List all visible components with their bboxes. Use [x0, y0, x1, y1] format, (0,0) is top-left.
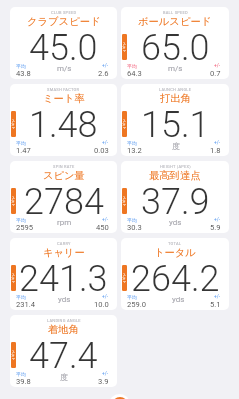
staticText: 259.0 — [127, 300, 147, 309]
staticText: m/s — [168, 64, 183, 73]
staticText: TOTAL — [168, 241, 182, 246]
staticText: 3.9 — [98, 377, 109, 386]
staticText: 37.9 — [141, 181, 210, 223]
staticText: 2784 — [24, 181, 104, 223]
staticText: ベスト — [122, 42, 126, 53]
staticText: ベスト — [11, 196, 15, 207]
staticText: m/s — [57, 64, 72, 73]
staticText: 2.6 — [98, 69, 109, 78]
staticText: 平均 — [16, 217, 26, 223]
staticText: 平均 — [16, 140, 26, 146]
staticText: 0.03 — [94, 146, 109, 155]
staticText: 度 — [172, 141, 180, 151]
staticText: スピン量 — [43, 169, 85, 182]
staticText: yds — [169, 218, 182, 227]
staticText: LANDING ANGLE — [47, 318, 81, 323]
staticText: +/- — [102, 294, 109, 300]
staticText: ベスト — [122, 119, 126, 130]
staticText: 43.8 — [16, 69, 31, 78]
staticText: +/- — [214, 63, 221, 69]
button[interactable]: Add shot — [109, 394, 130, 399]
staticText: 1.8 — [210, 146, 221, 155]
button[interactable]: Best result — [122, 265, 127, 291]
staticText: 47.4 — [29, 335, 98, 377]
staticText: 15.1 — [141, 104, 210, 146]
staticText: 2595 — [16, 223, 34, 232]
button[interactable]: Best result — [11, 265, 16, 291]
staticText: ベスト — [122, 273, 126, 284]
staticText: 平均 — [127, 63, 137, 69]
staticText: +/- — [102, 217, 109, 223]
staticText: 度 — [60, 372, 68, 382]
staticText: クラブスピード — [27, 15, 101, 28]
staticText: 1.47 — [16, 146, 31, 155]
staticText: 241.3 — [19, 258, 108, 300]
staticText: ベスト — [11, 273, 15, 284]
staticText: 1.48 — [29, 104, 98, 146]
staticText: 10.0 — [94, 300, 109, 309]
button[interactable]: SMASH FACTOR — [10, 84, 117, 156]
staticText: ボールスピード — [138, 15, 212, 28]
button[interactable]: Best result — [11, 111, 16, 137]
button[interactable]: LAUNCH ANGLE — [121, 84, 229, 156]
staticText: LAUNCH ANGLE — [159, 87, 192, 92]
staticText: 0.7 — [210, 69, 221, 78]
staticText: 打出角 — [160, 92, 191, 105]
button[interactable]: CLUB SPEED — [10, 7, 117, 79]
button[interactable]: LANDING ANGLE — [10, 315, 117, 387]
button[interactable]: TOTAL — [121, 238, 229, 310]
staticText: BALL SPEED — [163, 10, 188, 15]
staticText: 最高到達点 — [149, 169, 201, 182]
staticText: 5.9 — [210, 223, 221, 232]
staticText: 平均 — [127, 140, 137, 146]
staticText: HEIGHT (APEX) — [160, 164, 191, 169]
staticText: 平均 — [16, 371, 26, 377]
button[interactable]: Best result — [11, 188, 16, 214]
staticText: SPIN RATE — [53, 164, 75, 169]
staticText: yds — [58, 295, 71, 304]
staticText: rpm — [57, 218, 72, 227]
staticText: 39.8 — [16, 377, 31, 386]
staticText: キャリー — [43, 246, 85, 259]
staticText: 30.3 — [127, 223, 142, 232]
staticText: ミート率 — [43, 92, 85, 105]
staticText: +/- — [214, 217, 221, 223]
staticText: +/- — [102, 371, 109, 377]
button[interactable]: Best result — [122, 188, 127, 214]
staticText: 45.0 — [29, 27, 98, 69]
staticText: 平均 — [16, 294, 26, 300]
button[interactable]: BALL SPEED — [121, 7, 229, 79]
staticText: 5.1 — [210, 300, 221, 309]
staticText: 着地角 — [48, 323, 79, 336]
button[interactable]: CARRY — [10, 238, 117, 310]
button[interactable]: Best result — [122, 111, 127, 137]
staticText: 65.0 — [141, 27, 210, 69]
staticText: ベスト — [11, 350, 15, 361]
button[interactable]: SPIN RATE — [10, 161, 117, 233]
staticText: +/- — [214, 140, 221, 146]
staticText: +/- — [102, 63, 109, 69]
staticText: CLUB SPEED — [51, 10, 77, 15]
staticText: トータル — [154, 246, 196, 259]
staticText: 450 — [96, 223, 109, 232]
staticText: 64.3 — [127, 69, 142, 78]
staticText: 平均 — [127, 217, 137, 223]
staticText: 231.4 — [16, 300, 36, 309]
staticText: 平均 — [16, 63, 26, 69]
staticText: 264.2 — [131, 258, 220, 300]
staticText: CARRY — [57, 241, 71, 246]
staticText: ベスト — [122, 196, 126, 207]
staticText: ベスト — [11, 119, 15, 130]
button[interactable]: HEIGHT (APEX) — [121, 161, 229, 233]
staticText: +/- — [102, 140, 109, 146]
staticText: SMASH FACTOR — [47, 87, 80, 92]
button[interactable]: Best result — [122, 34, 127, 60]
staticText: +/- — [214, 294, 221, 300]
staticText: 平均 — [127, 294, 137, 300]
staticText: 13.2 — [127, 146, 142, 155]
staticText: yds — [172, 295, 185, 304]
button[interactable]: Best result — [11, 342, 16, 368]
